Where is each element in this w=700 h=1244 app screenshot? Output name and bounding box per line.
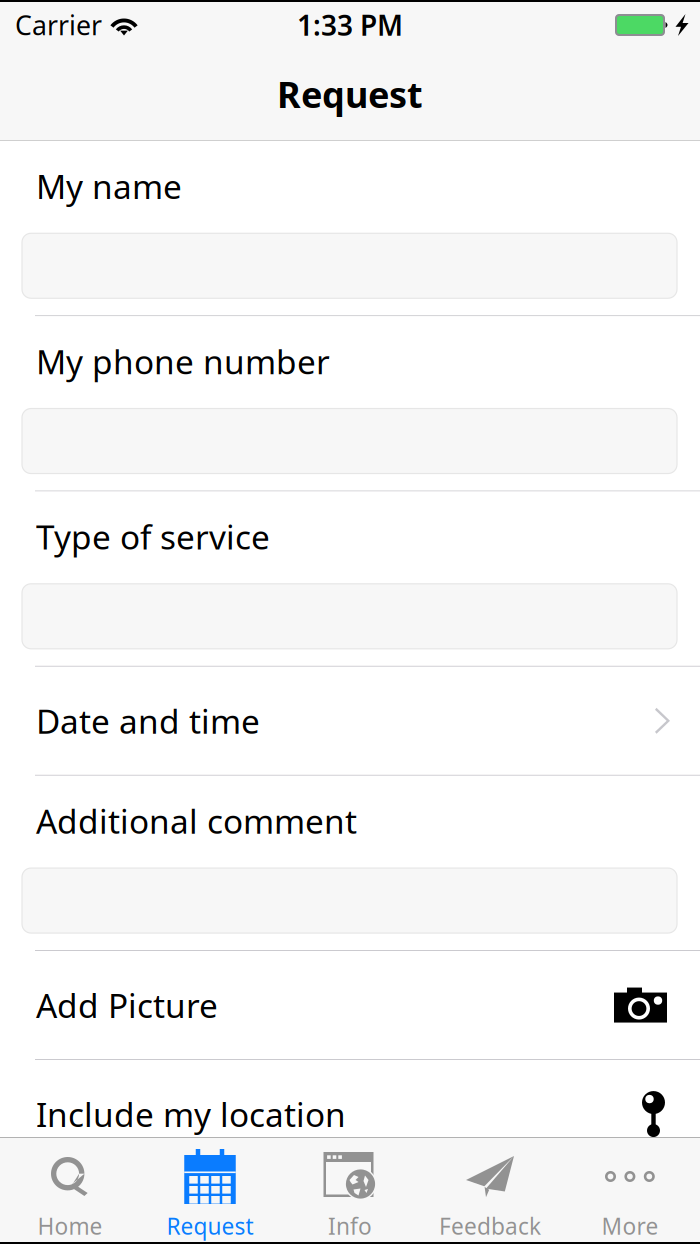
button[interactable]: Date and time	[0, 667, 700, 775]
staticText: Type of service	[36, 514, 270, 559]
button[interactable]: Additional comment	[0, 776, 700, 950]
staticText: Add Picture	[36, 983, 218, 1027]
staticText: My name	[36, 164, 182, 208]
staticText: Feedback	[439, 1211, 541, 1241]
staticText: Request	[166, 1211, 253, 1241]
button[interactable]: Include my location	[0, 1060, 700, 1168]
button[interactable]: Home	[0, 1138, 140, 1242]
staticText: Info	[328, 1211, 372, 1241]
staticText: Carrier	[15, 7, 102, 43]
button[interactable]: My phone number	[0, 316, 700, 491]
button[interactable]: Add Picture	[0, 951, 700, 1059]
button[interactable]: Type of service	[0, 491, 700, 666]
staticText: Additional comment	[36, 799, 357, 843]
staticText: More	[601, 1211, 658, 1241]
button[interactable]: More	[560, 1138, 700, 1242]
staticText: 1:33 PM	[297, 6, 403, 44]
staticText: Home	[37, 1211, 102, 1241]
staticText: Request	[277, 70, 423, 118]
staticText: My phone number	[36, 339, 330, 384]
button[interactable]: Info	[280, 1138, 420, 1242]
staticText: Include my location	[36, 1092, 346, 1136]
button[interactable]: Feedback	[420, 1138, 560, 1242]
staticText: Date and time	[36, 699, 260, 743]
button[interactable]: My name	[0, 141, 700, 315]
button[interactable]: Request	[140, 1138, 280, 1242]
